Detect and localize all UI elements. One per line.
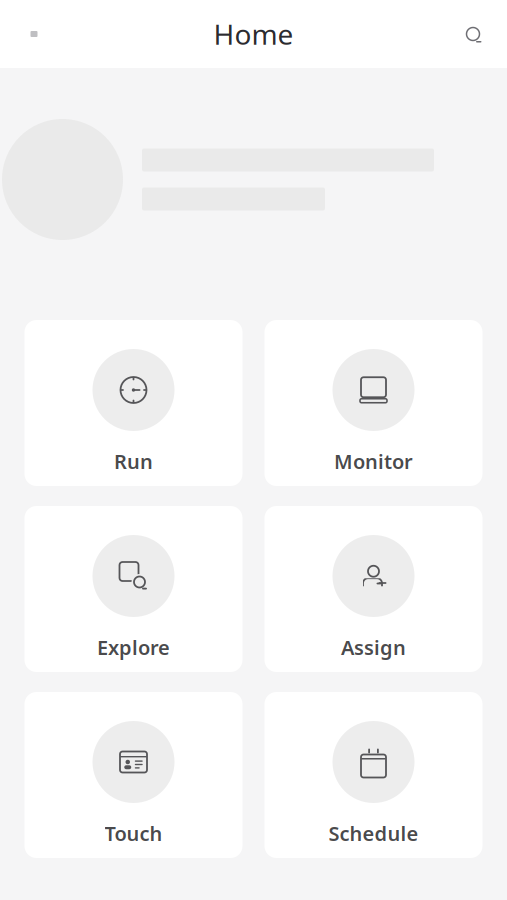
button[interactable]: Schedule <box>264 692 482 858</box>
staticText: Assign <box>341 634 406 661</box>
button[interactable]: Explore <box>24 506 242 672</box>
staticText: Explore <box>97 634 170 661</box>
staticText: Home <box>213 15 293 53</box>
staticText: Run <box>114 448 153 475</box>
button[interactable]: Run <box>24 320 242 486</box>
staticText: Schedule <box>328 820 418 847</box>
button[interactable]: Touch <box>24 692 242 858</box>
button[interactable]: Monitor <box>264 320 482 486</box>
staticText: Monitor <box>334 448 413 475</box>
button[interactable]: Menu <box>14 14 54 54</box>
button[interactable]: Assign <box>264 506 482 672</box>
button[interactable]: Search <box>453 14 493 54</box>
staticText: Touch <box>104 820 162 847</box>
